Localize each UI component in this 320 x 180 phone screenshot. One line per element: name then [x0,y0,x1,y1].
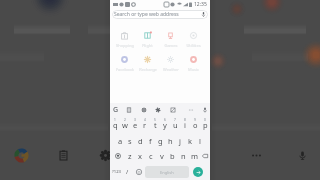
staticText: English [160,170,174,175]
staticText: v [160,151,164,161]
staticText: h [168,136,173,146]
button[interactable]: b [167,148,178,164]
staticText: Games [164,43,178,48]
staticText: j [179,136,181,146]
button[interactable]: Shopping [113,31,136,48]
button[interactable]: k [185,132,195,148]
staticText: 8 [184,118,186,122]
button[interactable]: w [120,116,130,132]
button[interactable]: Search or type web address [112,10,208,19]
button[interactable]: c [145,148,156,164]
staticText: G [113,105,119,114]
staticText: z [128,151,132,161]
button[interactable]: d [135,132,145,148]
staticText: q [113,120,118,130]
button[interactable]: i [180,116,190,132]
button[interactable]: Translate [168,105,177,114]
button[interactable]: Voice input [200,105,209,114]
staticText: s [128,136,132,146]
staticText: l [199,136,201,146]
staticText: 6 [164,118,166,122]
staticText: 0 [204,118,206,122]
staticText: Music [188,67,199,72]
button[interactable]: Backspace [200,148,210,164]
button[interactable]: Flight Offers [136,31,159,48]
staticText: x [138,151,142,161]
staticText: m [191,151,199,161]
staticText: i [184,120,186,130]
button[interactable]: Settings [139,105,148,114]
button[interactable]: u [170,116,180,132]
button[interactable]: q [110,116,120,132]
staticText: Search or type web address [114,11,179,18]
staticText: d [138,136,143,146]
button[interactable]: g [155,132,165,148]
button[interactable]: Utilities [182,31,205,48]
button[interactable]: s [125,132,135,148]
staticText: r [143,120,147,130]
button[interactable]: r [140,116,150,132]
button[interactable]: j [175,132,185,148]
staticText: Weather [163,67,179,72]
staticText: a [118,136,123,146]
staticText: u [173,120,178,130]
staticText: o [193,120,198,130]
staticText: t [154,120,157,130]
staticText: 5 [154,118,156,122]
staticText: w [122,120,128,130]
button[interactable]: Clipboard [124,105,133,114]
button[interactable]: x [135,148,145,164]
button[interactable]: o [190,116,200,132]
button[interactable]: / [123,166,132,178]
staticText: Shopping [116,43,134,48]
staticText: Utilities [186,43,201,48]
button[interactable]: y [160,116,170,132]
staticText: f [149,136,152,146]
button[interactable]: Google [111,105,120,114]
staticText: k [188,136,193,146]
button[interactable]: a [115,132,125,148]
button[interactable]: Shift [110,148,125,164]
button[interactable]: t [150,116,160,132]
button[interactable]: p [200,116,210,132]
button[interactable]: m [189,148,200,164]
staticText: 3 [134,118,136,122]
button[interactable]: f [145,132,155,148]
staticText: y [163,120,167,130]
staticText: 9 [194,118,196,122]
staticText: g [158,136,163,146]
button[interactable]: More options [186,105,195,114]
staticText: 1 [114,118,116,122]
button[interactable]: Recharge [136,55,159,72]
button[interactable]: h [165,132,175,148]
button[interactable]: Go [193,167,203,177]
button[interactable]: Space [145,166,189,178]
button[interactable]: Games [159,31,182,48]
button[interactable]: Weather [159,55,182,72]
staticText: ?123 [112,169,122,175]
staticText: c [149,151,153,161]
staticText: 4 [144,118,146,122]
button[interactable]: Emoji [132,166,145,178]
other: Voice search [201,12,206,17]
staticText: / [126,168,129,176]
button[interactable]: n [178,148,189,164]
button[interactable]: Facebook [113,55,136,72]
staticText: b [170,151,175,161]
button[interactable]: z [125,148,135,164]
staticText: n [181,151,186,161]
button[interactable]: Music [182,55,205,72]
staticText: 12:35 [194,1,207,8]
staticText: e [133,120,138,130]
button[interactable]: ?123 [110,166,123,178]
staticText: 2 [124,118,126,122]
staticText: p [203,120,208,130]
staticText: Flight Offers [136,43,159,48]
staticText: 7 [174,118,176,122]
button[interactable]: v [156,148,167,164]
button[interactable]: Stickers [153,105,162,114]
button[interactable]: e [130,116,140,132]
staticText: Facebook [116,67,134,72]
button[interactable]: l [195,132,205,148]
staticText: Recharge [139,67,157,72]
